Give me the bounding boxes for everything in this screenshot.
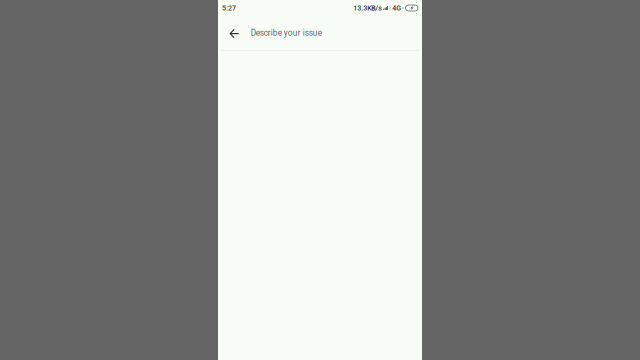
staticText: Describe your issue (251, 28, 322, 38)
staticText: 5:27 (222, 4, 236, 12)
staticText: 4G (392, 4, 401, 12)
staticText: 13.3KB/s (353, 4, 382, 12)
button[interactable]: Back (222, 16, 246, 50)
